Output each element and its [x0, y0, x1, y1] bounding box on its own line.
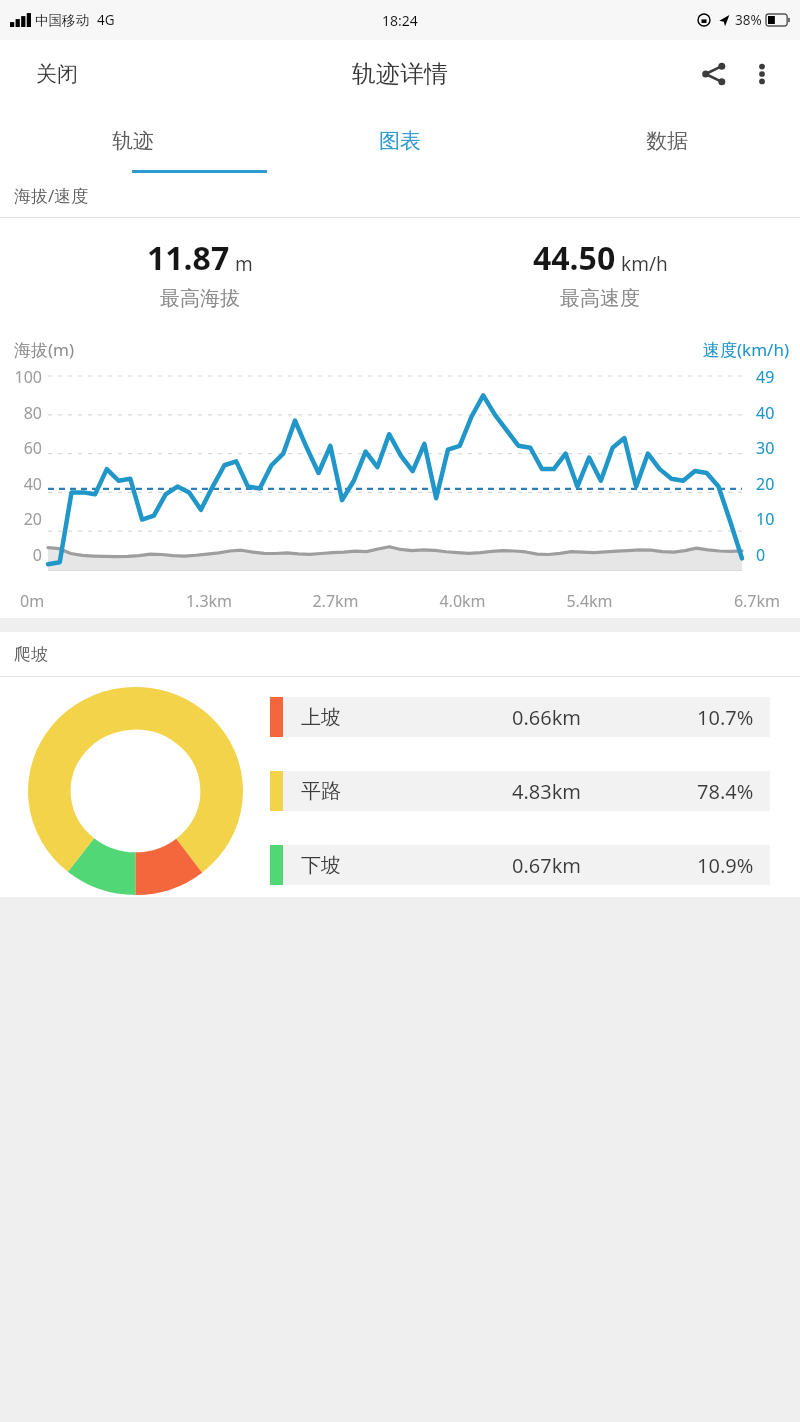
staticText: 49: [756, 366, 786, 388]
staticText: 4.0km: [399, 590, 526, 612]
staticText: km/h: [621, 251, 668, 277]
staticText: 5.4km: [526, 590, 653, 612]
button[interactable]: 上坡: [270, 697, 770, 737]
staticText: 海拔(m): [14, 338, 75, 361]
staticText: 38%: [735, 11, 762, 29]
staticText: 下坡: [301, 853, 396, 878]
button[interactable]: 图表: [266, 108, 533, 173]
staticText: 轨迹详情: [352, 59, 448, 89]
staticText: 78.4%: [697, 778, 754, 805]
staticText: 1.3km: [146, 590, 272, 612]
staticText: 上坡: [301, 705, 396, 730]
staticText: 30: [756, 437, 786, 459]
staticText: 0.67km: [396, 852, 697, 879]
staticText: 20: [756, 473, 786, 495]
staticText: 最高海拔: [160, 286, 240, 311]
staticText: 18:24: [382, 11, 418, 30]
staticText: 100: [6, 366, 42, 388]
staticText: 0: [756, 544, 786, 566]
staticText: 44.50: [533, 236, 616, 280]
staticText: 关闭: [36, 61, 78, 87]
button[interactable]: 数据: [533, 108, 800, 173]
staticText: 40: [6, 473, 42, 495]
staticText: 轨迹: [112, 128, 154, 154]
staticText: 2.7km: [272, 590, 399, 612]
staticText: 40: [756, 402, 786, 424]
staticText: 10.9%: [697, 852, 754, 879]
button[interactable]: More options: [738, 50, 786, 98]
staticText: 11.87: [147, 236, 230, 280]
button[interactable]: 轨迹: [0, 108, 266, 173]
staticText: 60: [6, 437, 42, 459]
staticText: 0: [6, 544, 42, 566]
button[interactable]: 平路: [270, 771, 770, 811]
button[interactable]: 下坡: [270, 845, 770, 885]
staticText: 4G: [97, 11, 115, 29]
staticText: 数据: [646, 128, 688, 154]
staticText: 10: [756, 508, 786, 530]
staticText: m: [235, 251, 253, 277]
staticText: 20: [6, 508, 42, 530]
staticText: 0.66km: [396, 704, 697, 731]
staticText: 0m: [20, 590, 146, 612]
staticText: 中国移动: [35, 12, 89, 29]
staticText: 80: [6, 402, 42, 424]
staticText: 6.7km: [653, 590, 780, 612]
staticText: 最高速度: [560, 286, 640, 311]
staticText: 速度(km/h): [703, 338, 790, 361]
staticText: 平路: [301, 779, 396, 804]
staticText: 爬坡: [14, 644, 48, 665]
button[interactable]: 关闭: [28, 53, 86, 95]
button[interactable]: Share: [690, 50, 738, 98]
staticText: 海拔/速度: [14, 184, 89, 207]
staticText: 4.83km: [396, 778, 697, 805]
staticText: 图表: [379, 128, 421, 154]
staticText: 10.7%: [697, 704, 754, 731]
